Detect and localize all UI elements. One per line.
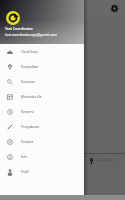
staticText: Cloud Saya xyxy=(21,50,38,54)
staticText: Konversi xyxy=(21,110,34,114)
button[interactable]: Settings xyxy=(110,4,119,13)
button[interactable]: Membuka file xyxy=(0,89,84,104)
staticText: Lokasi Saya xyxy=(97,158,115,162)
staticText: Membuka file xyxy=(21,95,42,99)
staticText: Temukan xyxy=(21,80,35,84)
staticText: Info xyxy=(21,155,28,159)
button[interactable]: Info xyxy=(0,149,84,164)
staticText: Kompas xyxy=(21,140,34,144)
button[interactable]: Kompas xyxy=(0,134,84,149)
button[interactable]: Cloud Saya xyxy=(0,44,84,59)
staticText: test.coordinator.app@gmail.com xyxy=(5,32,57,37)
staticText: Kumpulkan xyxy=(21,65,39,69)
staticText: Test Coordinator xyxy=(5,26,34,31)
button[interactable]: Pengukuran xyxy=(0,119,84,134)
staticText: Pengukuran xyxy=(21,125,40,129)
button[interactable]: Temukan xyxy=(0,74,84,89)
button[interactable]: Konversi xyxy=(0,104,84,119)
button[interactable]: Kumpulkan xyxy=(0,59,84,74)
button[interactable]: Profil xyxy=(0,164,84,179)
button[interactable]: Lokasi Saya xyxy=(0,154,125,184)
staticText: Profil xyxy=(21,170,29,174)
